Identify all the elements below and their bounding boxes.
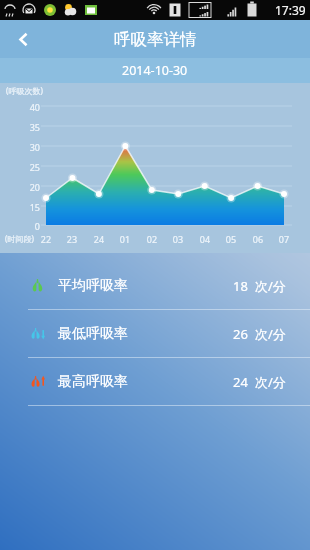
staticText: 01 bbox=[117, 233, 133, 245]
staticText: 26 bbox=[233, 325, 248, 343]
staticText: 05 bbox=[223, 233, 239, 245]
staticText: 次/分 bbox=[255, 277, 286, 295]
staticText: 最低呼吸率 bbox=[58, 325, 128, 343]
staticText: 次/分 bbox=[255, 325, 286, 343]
staticText: 平均呼吸率 bbox=[58, 277, 128, 295]
staticText: 23 bbox=[64, 233, 80, 245]
staticText: 25 bbox=[20, 161, 40, 173]
staticText: 03 bbox=[170, 233, 186, 245]
staticText: 02 bbox=[144, 233, 160, 245]
staticText: 20 bbox=[20, 181, 40, 193]
staticText: 18 bbox=[233, 277, 248, 295]
staticText: 17:39 bbox=[275, 2, 306, 18]
staticText: (时间段) bbox=[5, 233, 34, 244]
staticText: 30 bbox=[20, 141, 40, 153]
staticText: 35 bbox=[20, 121, 40, 133]
button[interactable]: 最低呼吸率 bbox=[0, 310, 310, 357]
staticText: 22 bbox=[38, 233, 54, 245]
staticText: 40 bbox=[20, 101, 40, 113]
button[interactable]: 平均呼吸率 bbox=[0, 262, 310, 309]
staticText: 06 bbox=[250, 233, 266, 245]
staticText: 0 bbox=[20, 220, 40, 232]
staticText: 次/分 bbox=[255, 373, 286, 391]
staticText: 24 bbox=[233, 373, 248, 391]
staticText: 呼吸率详情 bbox=[114, 29, 197, 50]
button[interactable]: Back bbox=[0, 20, 46, 58]
staticText: 24 bbox=[91, 233, 107, 245]
staticText: 最高呼吸率 bbox=[58, 373, 128, 391]
staticText: (呼吸次数) bbox=[6, 85, 43, 96]
staticText: 07 bbox=[276, 233, 292, 245]
staticText: 15 bbox=[20, 201, 40, 213]
button[interactable]: 最高呼吸率 bbox=[0, 358, 310, 405]
staticText: 2014-10-30 bbox=[122, 62, 188, 79]
staticText: 04 bbox=[197, 233, 213, 245]
